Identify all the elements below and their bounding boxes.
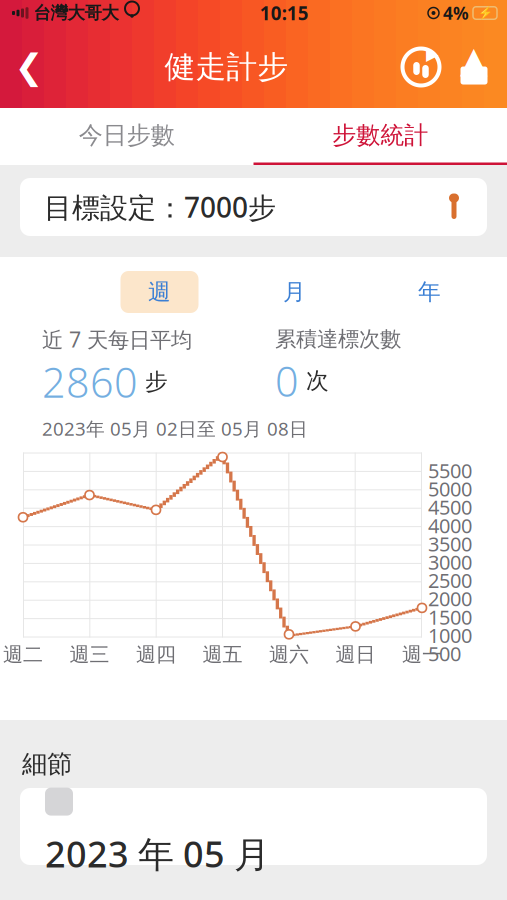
staticText: 週四 xyxy=(136,642,176,667)
staticText: 累積達標次數 xyxy=(275,326,401,352)
button[interactable]: Home xyxy=(447,40,501,94)
button[interactable]: 年 xyxy=(390,271,468,313)
staticText: 2860 xyxy=(42,354,138,409)
staticText: 週日 xyxy=(335,642,375,667)
staticText: 週三 xyxy=(69,642,109,667)
staticText: ▲ xyxy=(460,39,488,80)
staticText: 4% xyxy=(443,1,469,24)
staticText: 細節 xyxy=(22,748,72,779)
staticText: 週 xyxy=(148,278,171,306)
staticText: 0 xyxy=(275,353,299,408)
staticText: 今日步數 xyxy=(79,120,175,150)
button[interactable]: 目標設定：7000步 xyxy=(20,178,487,236)
staticText: 1000 xyxy=(428,622,472,648)
staticText: ▸ xyxy=(426,39,439,68)
staticText: ❮ xyxy=(14,47,43,87)
staticText: 月 xyxy=(283,278,306,306)
staticText: 步數統計 xyxy=(332,120,428,150)
staticText: 5000 xyxy=(428,475,472,502)
staticText: 2023 年 05 月 xyxy=(45,830,270,877)
staticText: 週一 xyxy=(402,642,442,667)
staticText: 步 xyxy=(145,368,168,396)
staticText: 10:15 xyxy=(260,1,309,25)
button[interactable]: 步數統計 xyxy=(253,108,507,165)
staticText: 5500 xyxy=(428,457,472,484)
button[interactable]: 月 xyxy=(255,271,333,313)
button[interactable]: 今日步數 xyxy=(0,108,253,165)
staticText: 次 xyxy=(306,367,329,395)
button[interactable]: Refresh steps xyxy=(395,40,447,94)
staticText: 2023年 05月 02日至 05月 08日 xyxy=(42,416,308,441)
staticText: 1500 xyxy=(428,604,472,630)
staticText: 週二 xyxy=(3,642,43,667)
staticText: 3500 xyxy=(428,530,472,557)
staticText: 3000 xyxy=(428,549,472,575)
staticText: 4500 xyxy=(428,494,472,520)
staticText: 台灣大哥大 xyxy=(33,2,118,24)
staticText: 近 7 天每日平均 xyxy=(42,325,192,353)
staticText: 500 xyxy=(428,640,461,667)
staticText: 目標設定：7000步 xyxy=(44,188,276,226)
staticText: 週五 xyxy=(202,642,242,667)
staticText: ⚡ xyxy=(477,6,492,20)
button[interactable]: Back xyxy=(0,34,58,100)
staticText: 2500 xyxy=(428,567,472,594)
staticText: 健走計步 xyxy=(164,48,288,86)
staticText: 年 xyxy=(418,278,441,306)
staticText: 週六 xyxy=(269,642,309,667)
staticText: 4000 xyxy=(428,512,472,539)
button[interactable]: 週 xyxy=(120,271,198,313)
staticText: 2000 xyxy=(428,585,472,612)
